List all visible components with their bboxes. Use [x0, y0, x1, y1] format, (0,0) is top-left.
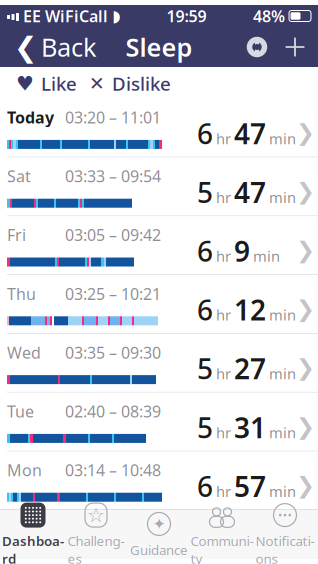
- staticText: Dislike: [112, 71, 171, 96]
- staticText: min: [253, 246, 280, 266]
- staticText: ✕: [89, 73, 105, 94]
- button[interactable]: Sat: [0, 157, 318, 216]
- staticText: Thu: [7, 283, 36, 304]
- staticText: EE WiFiCall: [23, 5, 108, 27]
- staticText: Wed: [7, 342, 41, 363]
- staticText: Like: [41, 71, 77, 96]
- staticText: ❯: [296, 119, 315, 145]
- button[interactable]: ✕: [83, 67, 177, 100]
- staticText: Notifications: [255, 532, 314, 564]
- button[interactable]: Mon: [0, 451, 318, 510]
- staticText: Sat: [7, 165, 31, 187]
- staticText: 9: [234, 232, 250, 269]
- staticText: hr: [216, 129, 231, 148]
- staticText: hr: [216, 423, 231, 442]
- staticText: min: [269, 305, 296, 325]
- staticText: 47: [234, 115, 266, 152]
- button[interactable]: Settings: [238, 27, 276, 67]
- staticText: Sleep: [125, 30, 192, 64]
- staticText: ❯: [296, 237, 315, 263]
- staticText: Tue: [7, 401, 34, 422]
- staticText: 03:14 – 10:48: [65, 459, 161, 481]
- staticText: hr: [216, 481, 231, 501]
- staticText: ❯: [296, 296, 315, 321]
- staticText: Dashboard: [2, 532, 64, 564]
- staticText: ❯: [296, 355, 315, 380]
- staticText: 31: [234, 409, 266, 446]
- staticText: hr: [216, 364, 231, 383]
- staticText: This Week: [8, 74, 100, 99]
- button[interactable]: Dashboard: [1, 510, 64, 559]
- staticText: min: [269, 129, 296, 148]
- staticText: 03:20 – 11:01: [65, 107, 161, 128]
- staticText: ❯: [296, 413, 315, 439]
- staticText: min: [269, 364, 296, 383]
- staticText: 03:25 – 10:21: [65, 283, 161, 304]
- staticText: ❯: [296, 472, 315, 498]
- staticText: 6: [197, 467, 213, 505]
- staticText: Back: [41, 30, 97, 64]
- button[interactable]: Thu: [0, 275, 318, 334]
- staticText: 6: [197, 232, 213, 269]
- staticText: ❮: [14, 31, 37, 63]
- staticText: 19:59: [166, 5, 206, 27]
- staticText: ❯: [296, 178, 315, 204]
- staticText: Challenges: [67, 532, 124, 564]
- staticText: hr: [216, 187, 231, 207]
- staticText: hr: [216, 246, 231, 266]
- button[interactable]: Wed: [0, 334, 318, 393]
- staticText: ♥: [16, 72, 34, 95]
- staticText: 6: [197, 291, 213, 328]
- staticText: ✦: [152, 515, 165, 533]
- staticText: 03:33 – 09:54: [65, 165, 161, 187]
- staticText: 5: [197, 350, 213, 387]
- staticText: 6: [197, 115, 213, 152]
- button[interactable]: ✦: [127, 510, 190, 559]
- staticText: 12: [234, 291, 266, 328]
- button[interactable]: ❮: [4, 27, 107, 67]
- button[interactable]: Add: [276, 27, 314, 67]
- staticText: Mon: [7, 459, 42, 481]
- staticText: 5: [197, 173, 213, 211]
- staticText: 57: [234, 467, 266, 505]
- staticText: hr: [216, 305, 231, 325]
- button[interactable]: Tue: [0, 393, 318, 451]
- staticText: 6 hr 22 min avg: [169, 510, 310, 535]
- button[interactable]: ☆: [64, 510, 127, 559]
- button[interactable]: Community: [190, 510, 253, 559]
- staticText: min: [269, 481, 296, 501]
- staticText: min: [269, 423, 296, 442]
- staticText: 47: [234, 173, 266, 211]
- staticText: Guidance: [130, 541, 188, 559]
- staticText: 27: [234, 350, 266, 387]
- staticText: Last Week: [8, 510, 101, 535]
- staticText: 48%: [253, 5, 285, 27]
- staticText: 03:05 – 09:42: [65, 224, 161, 245]
- staticText: Today: [7, 107, 54, 128]
- button[interactable]: Today: [0, 99, 318, 157]
- staticText: 02:40 – 08:39: [65, 401, 161, 422]
- staticText: ◗: [112, 7, 120, 25]
- staticText: 5: [197, 409, 213, 446]
- staticText: ☆: [87, 504, 105, 526]
- staticText: 03:35 – 09:30: [65, 342, 161, 363]
- staticText: Fri: [7, 224, 26, 245]
- staticText: Community: [190, 532, 253, 564]
- staticText: min: [269, 187, 296, 207]
- button[interactable]: ♥: [10, 67, 83, 100]
- button[interactable]: Notifications: [253, 510, 316, 559]
- button[interactable]: Fri: [0, 216, 318, 275]
